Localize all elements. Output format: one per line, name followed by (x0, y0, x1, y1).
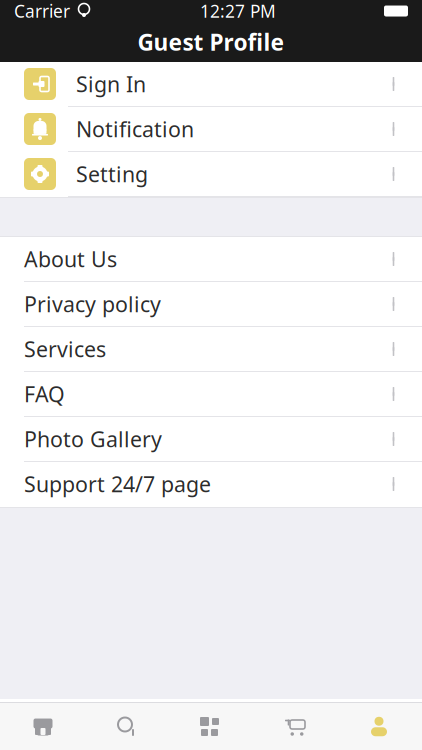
button[interactable]: Categories (169, 702, 253, 750)
button[interactable]: Notification (0, 107, 422, 152)
staticText: FAQ (24, 380, 65, 408)
staticText: Carrier (14, 0, 70, 22)
staticText: Guest Profile (137, 27, 284, 57)
staticText: Notification (76, 115, 194, 143)
button[interactable]: Setting (0, 152, 422, 197)
staticText: Support 24/7 page (24, 470, 211, 498)
staticText: Privacy policy (24, 290, 161, 318)
staticText: Services (24, 335, 106, 363)
button[interactable]: Photo Gallery (0, 417, 422, 462)
button[interactable]: Home (1, 702, 85, 750)
button[interactable]: Support 24/7 page (0, 462, 422, 507)
button[interactable]: Sign In (0, 62, 422, 107)
staticText: Sign In (76, 70, 146, 98)
button[interactable]: About Us (0, 237, 422, 282)
button[interactable]: Privacy policy (0, 282, 422, 327)
button[interactable]: Search (85, 702, 169, 750)
button[interactable]: Services (0, 327, 422, 372)
button[interactable]: Cart (253, 702, 337, 750)
staticText: About Us (24, 245, 117, 273)
staticText: Photo Gallery (24, 425, 162, 453)
button[interactable]: FAQ (0, 372, 422, 417)
staticText: 12:27 PM (200, 0, 276, 22)
staticText: Setting (76, 160, 148, 188)
button[interactable]: Profile (337, 702, 421, 750)
